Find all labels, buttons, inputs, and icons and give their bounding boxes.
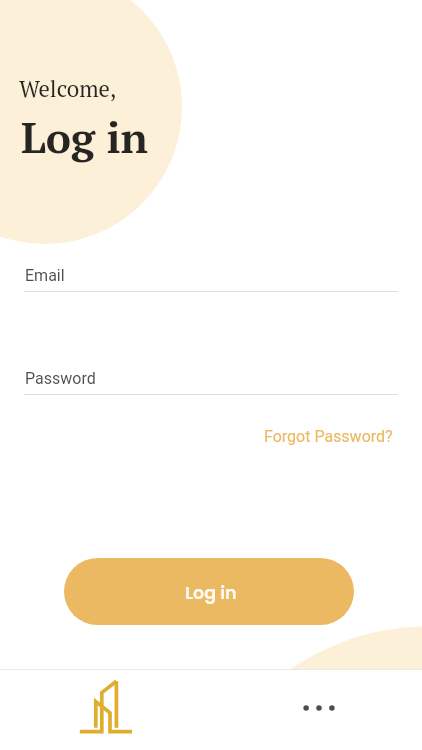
button[interactable]: Forgot Password? [262,425,395,448]
staticText: Forgot Password? [264,427,393,446]
staticText: Email [25,266,65,285]
staticText: Log in [21,109,148,165]
button[interactable]: Home [68,670,144,750]
button[interactable]: Log in [64,558,354,625]
button[interactable]: Email [0,266,422,296]
staticText: Password [25,369,96,388]
button[interactable]: More options [293,682,345,734]
staticText: Welcome, [19,74,117,104]
staticText: Log in [185,581,237,606]
button[interactable]: Password [0,369,422,399]
